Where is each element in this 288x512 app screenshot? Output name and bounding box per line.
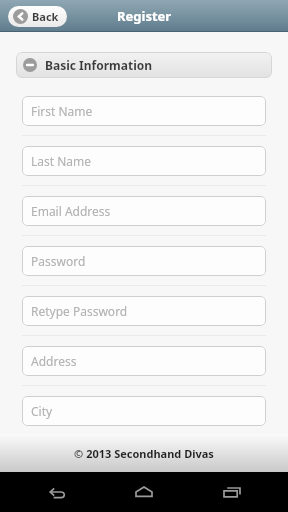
staticText: Password [31, 253, 86, 269]
button[interactable]: Retype Password [22, 296, 266, 326]
button[interactable]: City [22, 396, 266, 426]
staticText: Last Name [31, 153, 92, 169]
staticText: Email Address [31, 203, 111, 219]
staticText: Address [31, 353, 77, 369]
button[interactable]: Recent apps [201, 472, 263, 512]
button[interactable]: Back [8, 6, 67, 27]
staticText: First Name [31, 103, 93, 119]
button[interactable]: Email Address [22, 196, 266, 226]
button[interactable]: Address [22, 346, 266, 376]
button[interactable]: Password [22, 246, 266, 276]
staticText: City [31, 403, 53, 419]
button[interactable]: Last Name [22, 146, 266, 176]
button[interactable]: Back [26, 472, 88, 512]
staticText: Back [32, 9, 59, 24]
staticText: © 2013 Secondhand Divas [74, 446, 214, 461]
button[interactable]: Basic Information [16, 52, 272, 78]
button[interactable]: Home [113, 472, 175, 512]
button[interactable]: First Name [22, 96, 266, 126]
staticText: Retype Password [31, 303, 128, 319]
staticText: Register [117, 7, 172, 25]
staticText: Basic Information [45, 57, 153, 73]
